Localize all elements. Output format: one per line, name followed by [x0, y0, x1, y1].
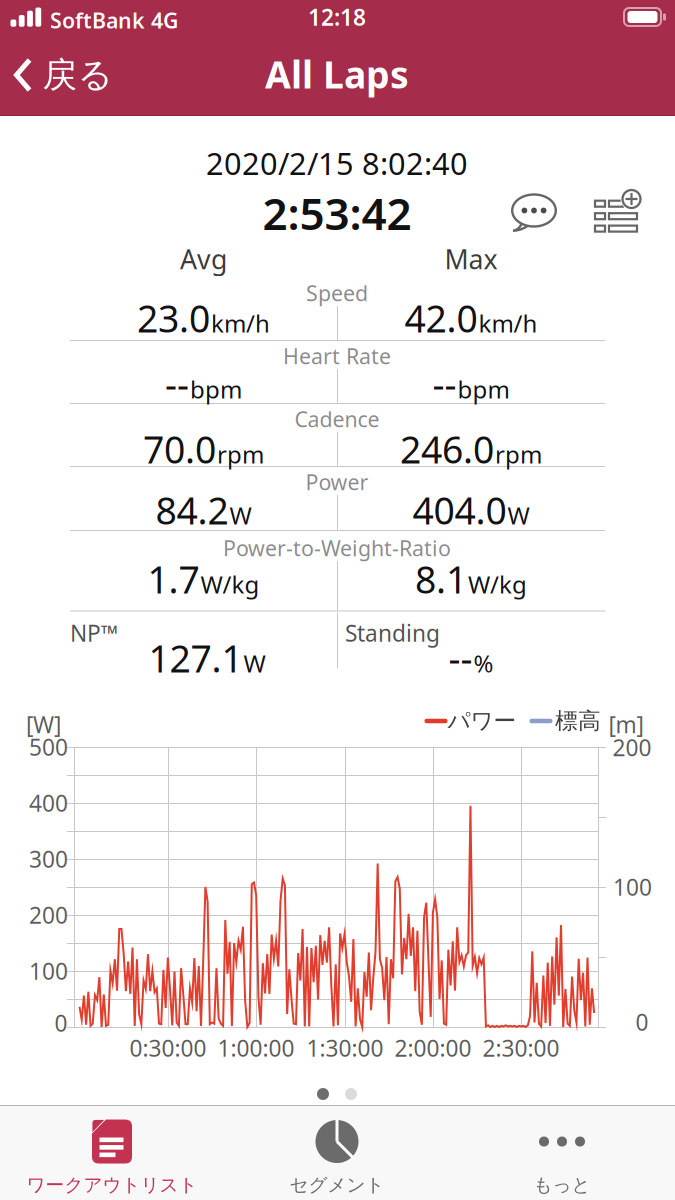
staticText: 200 [612, 732, 651, 762]
staticText: 0 [635, 1007, 648, 1037]
staticText: Standing [345, 618, 440, 648]
staticText: Max [444, 241, 497, 277]
staticText: W/kg [200, 568, 259, 600]
staticText: All Laps [265, 49, 409, 99]
staticText: 84.2 [155, 485, 228, 535]
staticText: % [473, 647, 493, 679]
staticText: Avg [180, 241, 227, 277]
button[interactable]: 戻る [13, 54, 112, 96]
staticText: 2020/2/15 8:02:40 [206, 143, 468, 183]
staticText: 100 [29, 956, 68, 986]
staticText: 0 [54, 1008, 67, 1038]
button[interactable]: ワークアウトリスト [26, 1119, 197, 1196]
staticText: 246.0 [400, 424, 494, 474]
staticText: 404.0 [412, 485, 506, 535]
staticText: W [243, 647, 265, 679]
staticText: 0:30:00 [129, 1033, 206, 1063]
staticText: 70.0 [143, 424, 216, 474]
staticText: 127.1 [148, 633, 242, 683]
button[interactable]: セグメント [289, 1119, 384, 1196]
staticText: Power [305, 468, 368, 496]
staticText: km/h [478, 307, 537, 339]
staticText: [m] [608, 709, 643, 739]
staticText: 1:30:00 [306, 1033, 383, 1063]
staticText: -- [448, 633, 472, 683]
button[interactable]: Comment [506, 189, 562, 239]
staticText: 200 [29, 900, 68, 930]
staticText: パワー [447, 707, 516, 735]
staticText: -- [432, 359, 456, 409]
staticText: 42.0 [404, 293, 477, 343]
staticText: 戻る [42, 54, 112, 96]
staticText: km/h [211, 307, 270, 339]
staticText: 1.7 [147, 554, 199, 604]
staticText: 23.0 [137, 293, 210, 343]
staticText: ワークアウトリスト [26, 1173, 197, 1196]
staticText: rpm [217, 438, 264, 470]
staticText: NP™ [70, 618, 119, 648]
button[interactable]: Add lap [591, 190, 643, 236]
staticText: 2:30:00 [482, 1033, 559, 1063]
button[interactable]: もっと [533, 1119, 590, 1196]
staticText: 300 [29, 844, 68, 874]
staticText: 1:00:00 [217, 1033, 294, 1063]
staticText: W [229, 499, 251, 531]
staticText: もっと [533, 1173, 590, 1196]
staticText: SoftBank 4G [50, 6, 178, 34]
staticText: -- [165, 359, 189, 409]
staticText: 100 [613, 872, 652, 902]
staticText: Heart Rate [283, 342, 391, 370]
staticText: W/kg [468, 568, 527, 600]
staticText: 8.1 [415, 554, 467, 604]
staticText: [W] [26, 709, 61, 739]
staticText: W [507, 499, 529, 531]
staticText: 2:00:00 [394, 1033, 471, 1063]
staticText: Power-to-Weight-Ratio [223, 534, 451, 562]
staticText: 2:53:42 [262, 184, 411, 242]
staticText: bpm [190, 373, 242, 405]
staticText: 標高 [555, 707, 601, 735]
staticText: rpm [495, 438, 542, 470]
staticText: Cadence [294, 405, 379, 433]
staticText: 400 [29, 788, 68, 818]
staticText: Speed [306, 279, 368, 307]
staticText: 12:18 [308, 2, 366, 32]
staticText: bpm [457, 373, 509, 405]
staticText: セグメント [289, 1173, 384, 1196]
staticText: 500 [29, 732, 68, 762]
